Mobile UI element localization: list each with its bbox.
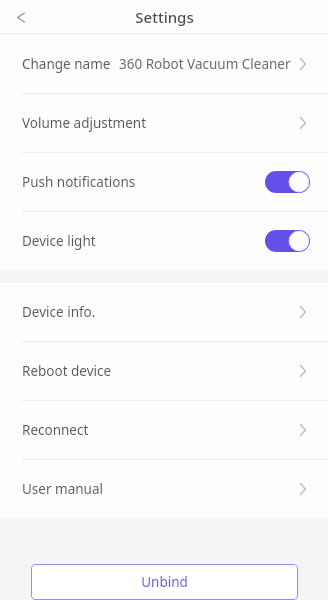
button[interactable]: Change name — [0, 34, 328, 93]
staticText: Unbind — [141, 573, 188, 591]
button[interactable]: Unbind — [31, 564, 298, 600]
button[interactable]: Device info. — [0, 283, 328, 341]
staticText: User manual — [22, 480, 103, 498]
button[interactable]: Device light — [0, 212, 328, 270]
staticText: Settings — [135, 7, 194, 27]
staticText: Reconnect — [22, 421, 89, 439]
button[interactable]: Volume adjustment — [0, 94, 328, 152]
staticText: Volume adjustment — [22, 114, 147, 132]
button[interactable]: User manual — [0, 460, 328, 518]
staticText: Push notifications — [22, 173, 136, 191]
staticText: Reboot device — [22, 362, 112, 380]
staticText: Device light — [22, 232, 96, 250]
button[interactable]: Back — [10, 6, 32, 28]
staticText: Change name — [22, 55, 111, 73]
button[interactable]: Reconnect — [0, 401, 328, 459]
staticText: Device info. — [22, 303, 96, 321]
button[interactable]: Push notifications — [0, 153, 328, 211]
button[interactable]: Reboot device — [0, 342, 328, 400]
staticText: 360 Robot Vacuum Cleaner — [119, 55, 291, 73]
